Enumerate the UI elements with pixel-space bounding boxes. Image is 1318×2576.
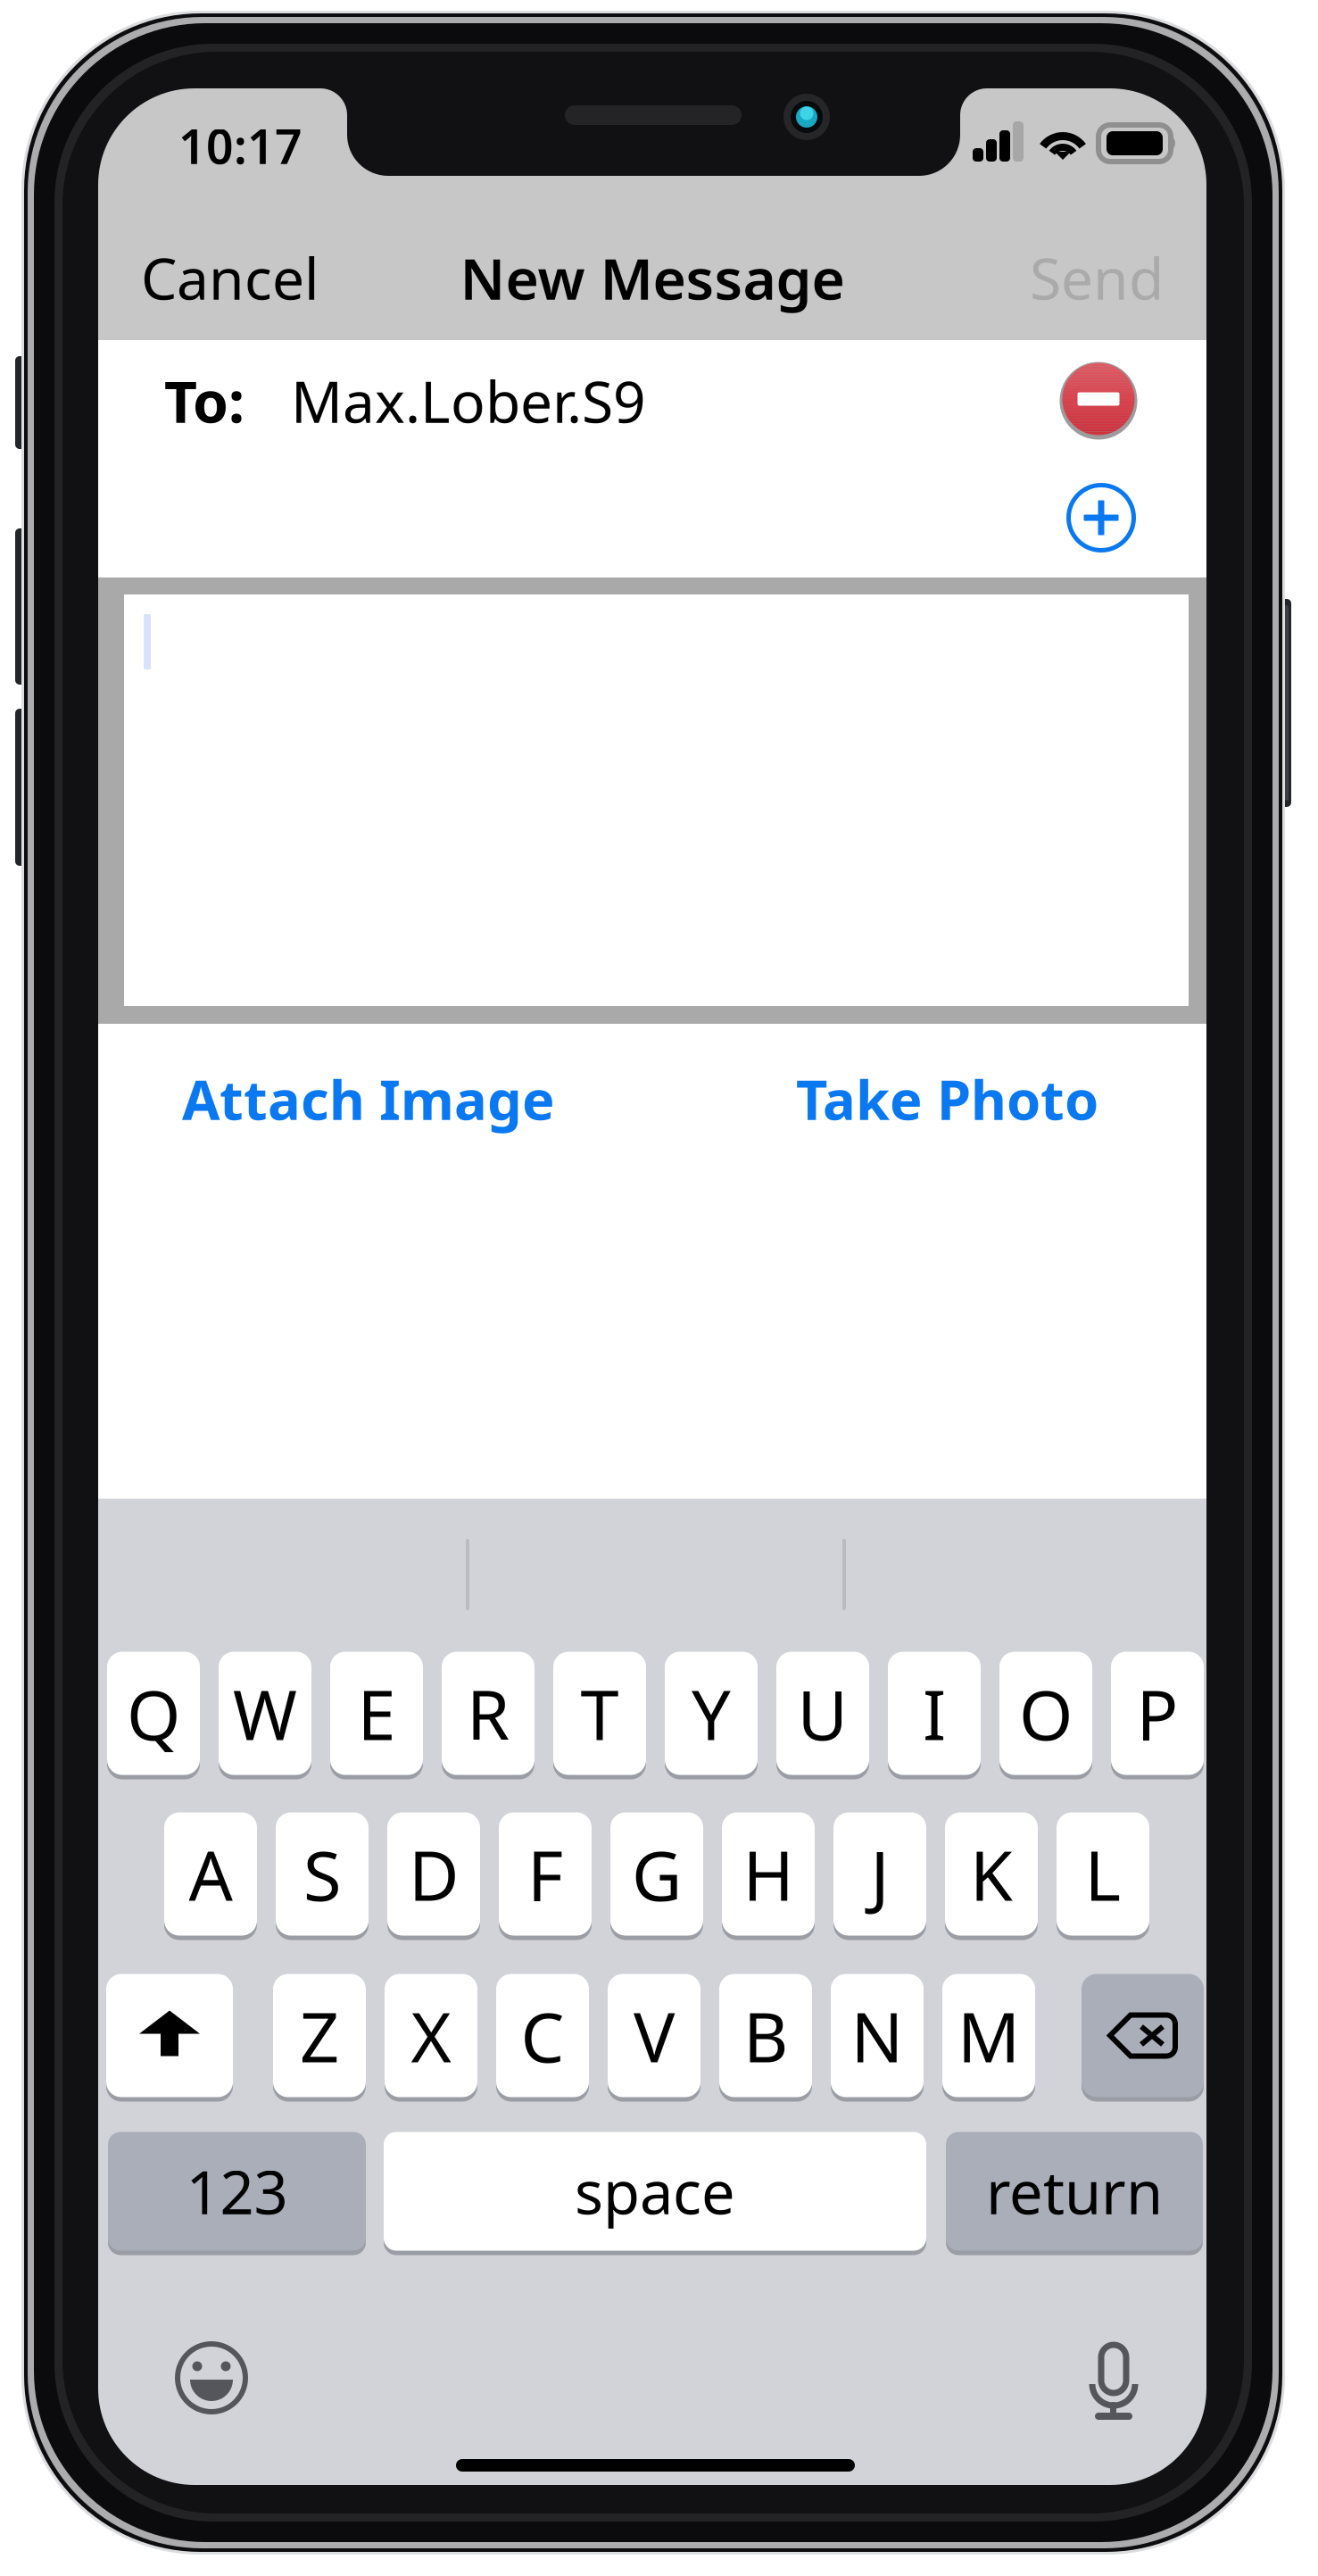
staticText: G: [632, 1828, 682, 1920]
button[interactable]: T: [553, 1649, 646, 1777]
staticText: R: [467, 1668, 510, 1759]
button[interactable]: R: [442, 1649, 535, 1777]
staticText: P: [1136, 1668, 1178, 1759]
staticText: J: [870, 1828, 889, 1920]
button[interactable]: O: [999, 1649, 1092, 1777]
button[interactable]: G: [610, 1810, 703, 1938]
staticText: Q: [127, 1668, 180, 1759]
button[interactable]: return: [946, 2130, 1203, 2253]
button[interactable]: D: [387, 1810, 480, 1938]
button[interactable]: Emoji keyboard: [170, 2337, 253, 2419]
button[interactable]: Send: [985, 224, 1164, 331]
button[interactable]: Shift: [106, 1972, 233, 2099]
button[interactable]: Add contact: [1060, 477, 1142, 559]
staticText: N: [851, 1990, 904, 2081]
staticText: L: [1085, 1828, 1121, 1920]
button[interactable]: X: [385, 1972, 477, 2099]
button[interactable]: Dictation: [1089, 2345, 1139, 2423]
button[interactable]: A: [164, 1810, 257, 1938]
button[interactable]: Delete: [1082, 1972, 1204, 2099]
button[interactable]: M: [942, 1972, 1035, 2099]
button[interactable]: E: [330, 1649, 423, 1777]
staticText: To:: [164, 363, 245, 439]
staticText: 10:17: [178, 114, 303, 177]
staticText: X: [411, 1990, 451, 2081]
button[interactable]: C: [496, 1972, 589, 2099]
staticText: V: [634, 1990, 675, 2081]
staticText: Z: [300, 1990, 339, 2081]
button[interactable]: Q: [107, 1649, 200, 1777]
button[interactable]: Cancel: [141, 224, 373, 331]
button[interactable]: K: [945, 1810, 1038, 1938]
staticText: U: [797, 1668, 848, 1759]
staticText: New Message: [460, 240, 845, 316]
staticText: return: [986, 2152, 1163, 2231]
button[interactable]: B: [719, 1972, 812, 2099]
button[interactable]: Remove recipient: [1057, 358, 1140, 440]
staticText: D: [409, 1828, 459, 1920]
staticText: Attach Image: [182, 1062, 555, 1135]
button[interactable]: H: [722, 1810, 815, 1938]
button[interactable]: W: [219, 1649, 311, 1777]
staticText: W: [233, 1668, 297, 1759]
button[interactable]: space: [384, 2130, 926, 2253]
button[interactable]: 123: [108, 2130, 366, 2253]
staticText: H: [743, 1828, 794, 1920]
button[interactable]: Z: [273, 1972, 366, 2099]
button[interactable]: L: [1057, 1810, 1149, 1938]
staticText: I: [923, 1668, 946, 1759]
staticText: Max.Lober.S9: [291, 363, 646, 439]
staticText: E: [357, 1668, 396, 1759]
staticText: S: [303, 1828, 341, 1920]
button[interactable]: N: [831, 1972, 924, 2099]
staticText: Cancel: [141, 240, 319, 316]
staticText: Send: [1030, 240, 1164, 316]
staticText: F: [527, 1828, 563, 1920]
button[interactable]: Y: [665, 1649, 758, 1777]
button[interactable]: V: [608, 1972, 700, 2099]
button[interactable]: P: [1111, 1649, 1204, 1777]
staticText: space: [575, 2152, 735, 2231]
button[interactable]: U: [776, 1649, 869, 1777]
staticText: O: [1019, 1668, 1073, 1759]
button[interactable]: Take Photo: [652, 1050, 1098, 1148]
staticText: Y: [692, 1668, 731, 1759]
staticText: A: [189, 1828, 232, 1920]
staticText: M: [957, 1990, 1020, 2081]
staticText: T: [580, 1668, 619, 1759]
button[interactable]: F: [499, 1810, 592, 1938]
staticText: K: [970, 1828, 1013, 1920]
button[interactable]: S: [276, 1810, 369, 1938]
button[interactable]: Attach Image: [182, 1050, 628, 1148]
button[interactable]: I: [888, 1649, 981, 1777]
button[interactable]: J: [833, 1810, 926, 1938]
staticText: B: [743, 1990, 788, 2081]
staticText: C: [521, 1990, 564, 2081]
staticText: 123: [186, 2152, 288, 2231]
staticText: Take Photo: [796, 1062, 1098, 1135]
